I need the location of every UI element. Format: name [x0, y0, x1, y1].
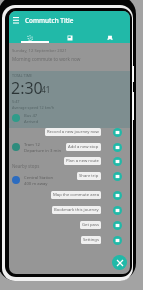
button[interactable]: Plan route	[113, 157, 122, 166]
button[interactable]: Plan a new route	[64, 157, 101, 165]
staticText: Settings	[83, 237, 99, 243]
staticText: TOTAL TIME	[12, 73, 32, 78]
staticText: Add a new stop	[68, 144, 99, 150]
staticText: Tram 12	[24, 142, 40, 148]
button[interactable]: Share trip	[113, 172, 122, 181]
staticText: Record a new journey now	[47, 129, 99, 135]
button[interactable]: Record journey	[113, 128, 122, 137]
button[interactable]: Map area	[113, 191, 122, 200]
staticText: 400 m away	[24, 181, 48, 187]
staticText: Map the commute area	[53, 192, 99, 198]
staticText: Share trip	[79, 173, 99, 179]
button[interactable]: Add stop	[113, 143, 122, 152]
button[interactable]: Close actions	[112, 255, 127, 270]
button[interactable]: Settings	[81, 236, 101, 244]
staticText: 5:47	[12, 99, 20, 104]
staticText: Plan a new route	[66, 158, 99, 164]
staticText: Average speed 12 km/h	[12, 105, 55, 110]
staticText: Sunday, 12 September 2021	[12, 48, 67, 54]
staticText: Central Station	[24, 175, 54, 181]
button[interactable]: Bookmark	[113, 206, 122, 215]
staticText: Commutch Title	[25, 16, 74, 25]
staticText: Departure in 3 min	[24, 148, 62, 154]
button[interactable]: Open navigation menu	[9, 13, 23, 27]
button[interactable]: Bus 47	[9, 111, 130, 125]
staticText: Morning commute to work now	[12, 56, 81, 62]
button[interactable]: Trips	[90, 32, 130, 44]
button[interactable]: Articles	[50, 32, 90, 44]
staticText: Bus 47	[24, 113, 38, 119]
button[interactable]: Add a new stop	[66, 143, 101, 151]
button[interactable]: Central Station	[9, 173, 130, 187]
button[interactable]: Record a new journey now	[45, 128, 101, 136]
staticText: Nearby stops	[12, 163, 40, 169]
staticText: Get pass	[82, 222, 99, 228]
staticText: Bookmark this journey	[54, 207, 99, 213]
button[interactable]: Share trip	[77, 172, 101, 180]
button[interactable]: Get pass	[80, 221, 101, 229]
button[interactable]: Explore	[9, 32, 50, 44]
staticText: 2:30	[11, 77, 43, 99]
button[interactable]: Settings	[113, 236, 122, 245]
button[interactable]	[9, 71, 130, 128]
staticText: .41	[39, 84, 51, 95]
staticText: Arrived	[24, 119, 39, 125]
button[interactable]: Map the commute area	[51, 191, 101, 199]
button[interactable]: Bookmark this journey	[52, 206, 101, 214]
button[interactable]: Tram 12	[9, 140, 130, 154]
button[interactable]: Get pass	[113, 221, 122, 230]
